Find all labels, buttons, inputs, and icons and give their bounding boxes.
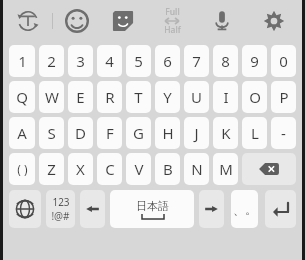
staticText: J: [194, 123, 199, 143]
staticText: -: [281, 123, 286, 143]
button[interactable]: Emoji: [59, 3, 95, 39]
button[interactable]: N: [184, 153, 209, 185]
staticText: 5: [134, 51, 143, 71]
button[interactable]: Enter: [265, 190, 296, 228]
staticText: 3: [76, 51, 85, 71]
button[interactable]: Change language: [9, 190, 41, 228]
staticText: 、。: [233, 202, 257, 217]
staticText: 9: [250, 51, 259, 71]
staticText: C: [105, 159, 115, 179]
staticText: 8: [221, 51, 230, 71]
button[interactable]: F: [97, 117, 122, 149]
staticText: A: [17, 123, 27, 143]
staticText: S: [47, 123, 56, 143]
button[interactable]: V: [126, 153, 151, 185]
button[interactable]: 8: [213, 45, 238, 77]
button[interactable]: 7: [184, 45, 209, 77]
button[interactable]: 6: [155, 45, 180, 77]
button[interactable]: Move cursor left: [80, 190, 105, 228]
staticText: K: [221, 123, 231, 143]
button[interactable]: ( ): [9, 153, 35, 185]
staticText: D: [75, 123, 86, 143]
staticText: 日本語: [136, 199, 169, 213]
button[interactable]: J: [184, 117, 209, 149]
button[interactable]: Backspace: [242, 153, 296, 185]
staticText: F: [106, 123, 114, 143]
button[interactable]: H: [155, 117, 180, 149]
staticText: E: [76, 87, 85, 107]
button[interactable]: S: [39, 117, 64, 149]
button[interactable]: Settings: [257, 4, 291, 38]
button[interactable]: Move cursor right: [199, 190, 224, 228]
button[interactable]: W: [39, 81, 64, 113]
button[interactable]: I: [213, 81, 238, 113]
button[interactable]: Voice input: [205, 4, 239, 38]
button[interactable]: 5: [126, 45, 151, 77]
button[interactable]: U: [184, 81, 209, 113]
button[interactable]: 0: [271, 45, 296, 77]
button[interactable]: 123: [46, 190, 75, 228]
staticText: I: [223, 87, 229, 107]
staticText: T: [134, 87, 143, 107]
staticText: Z: [47, 159, 56, 179]
button[interactable]: 、。: [231, 190, 258, 228]
button[interactable]: Z: [39, 153, 64, 185]
staticText: R: [105, 87, 115, 107]
button[interactable]: X: [68, 153, 93, 185]
staticText: ( ): [17, 161, 28, 177]
button[interactable]: 2: [39, 45, 64, 77]
button[interactable]: O: [242, 81, 267, 113]
button[interactable]: 4: [97, 45, 122, 77]
button[interactable]: A: [9, 117, 35, 149]
staticText: Half: [164, 24, 181, 36]
staticText: 123: [52, 195, 70, 209]
staticText: P: [279, 87, 289, 107]
button[interactable]: G: [126, 117, 151, 149]
button[interactable]: T: [126, 81, 151, 113]
button[interactable]: Full width / half width: [155, 3, 189, 39]
staticText: L: [251, 123, 259, 143]
staticText: Y: [163, 87, 172, 107]
staticText: W: [45, 87, 59, 107]
staticText: 1: [18, 51, 27, 71]
button[interactable]: Text conversion: [11, 4, 45, 38]
button[interactable]: R: [97, 81, 122, 113]
button[interactable]: Q: [9, 81, 35, 113]
staticText: N: [191, 159, 203, 179]
staticText: Q: [16, 87, 28, 107]
staticText: Full: [165, 6, 180, 18]
button[interactable]: B: [155, 153, 180, 185]
staticText: U: [191, 87, 202, 107]
button[interactable]: C: [97, 153, 122, 185]
button[interactable]: Stickers: [105, 3, 141, 39]
staticText: H: [162, 123, 174, 143]
button[interactable]: 9: [242, 45, 267, 77]
staticText: O: [249, 87, 261, 107]
staticText: G: [133, 123, 144, 143]
staticText: 0: [279, 51, 288, 71]
staticText: X: [76, 159, 85, 179]
button[interactable]: D: [68, 117, 93, 149]
staticText: B: [163, 159, 173, 179]
button[interactable]: 1: [9, 45, 35, 77]
button[interactable]: E: [68, 81, 93, 113]
button[interactable]: Y: [155, 81, 180, 113]
button[interactable]: P: [271, 81, 296, 113]
button[interactable]: 3: [68, 45, 93, 77]
staticText: 2: [47, 51, 56, 71]
staticText: M: [219, 159, 233, 179]
button[interactable]: 日本語: [110, 190, 194, 228]
staticText: 4: [105, 51, 114, 71]
button[interactable]: L: [242, 117, 267, 149]
staticText: 6: [163, 51, 172, 71]
staticText: 7: [192, 51, 201, 71]
button[interactable]: -: [271, 117, 296, 149]
button[interactable]: K: [213, 117, 238, 149]
staticText: !@#: [51, 209, 70, 223]
staticText: V: [134, 159, 144, 179]
button[interactable]: M: [213, 153, 238, 185]
